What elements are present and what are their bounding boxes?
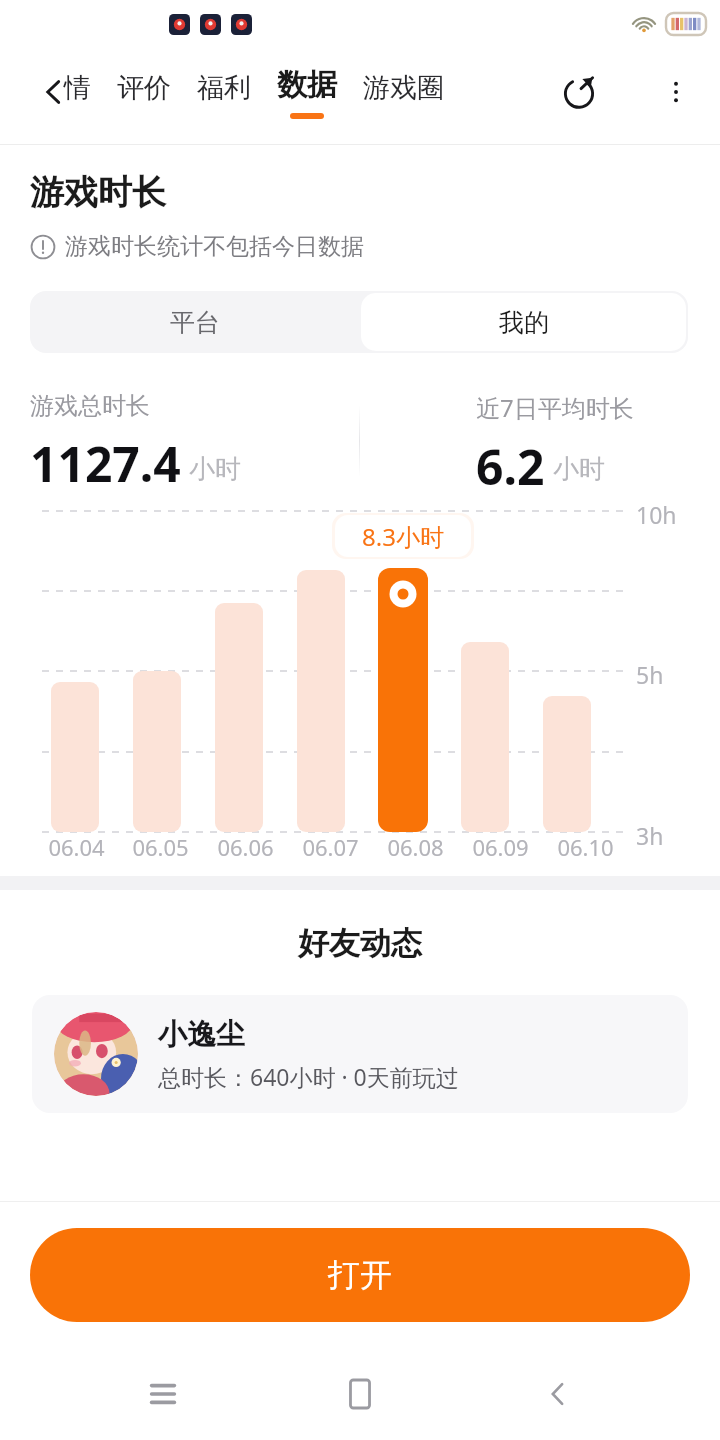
staticText: 小逸尘: [158, 1016, 245, 1053]
staticText: 5h: [636, 659, 664, 690]
staticText: 06.08: [387, 832, 444, 862]
staticText: 游戏圈: [363, 71, 444, 105]
staticText: 10h: [636, 499, 677, 530]
staticText: 1127.4: [30, 431, 181, 491]
staticText: 总时长：640小时 · 0天前玩过: [158, 1061, 459, 1092]
button[interactable]: 打开: [30, 1228, 690, 1322]
staticText: 06.05: [132, 832, 189, 862]
staticText: 福利: [197, 71, 251, 105]
button[interactable]: 数据: [275, 66, 339, 119]
staticText: 数据: [277, 66, 337, 104]
staticText: 好友动态: [298, 924, 422, 963]
staticText: 评价: [117, 71, 171, 105]
button[interactable]: 游戏圈: [361, 71, 446, 114]
staticText: 平台: [170, 307, 220, 338]
staticText: 游戏时长: [30, 171, 166, 214]
staticText: 打开: [328, 1255, 392, 1295]
staticText: 游戏时长统计不包括今日数据: [65, 232, 364, 261]
staticText: 情: [64, 71, 91, 105]
button[interactable]: Back: [523, 1359, 593, 1429]
staticText: 游戏总时长: [30, 391, 150, 421]
button[interactable]: More options: [654, 70, 698, 114]
button[interactable]: 福利: [195, 71, 253, 114]
button[interactable]: 平台: [30, 291, 359, 353]
button[interactable]: Back: [34, 72, 74, 112]
staticText: 3h: [636, 820, 664, 851]
button[interactable]: Share: [556, 69, 602, 115]
button[interactable]: 我的: [361, 293, 686, 351]
staticText: 我的: [499, 307, 549, 338]
button[interactable]: 评价: [115, 71, 173, 114]
button[interactable]: 小逸尘: [32, 995, 688, 1113]
staticText: 06.07: [302, 832, 359, 862]
staticText: 06.04: [48, 832, 105, 862]
staticText: 06.09: [472, 832, 529, 862]
button[interactable]: 情: [62, 71, 93, 114]
staticText: 6.2: [476, 434, 545, 491]
staticText: 近7日平均时长: [476, 391, 634, 424]
button[interactable]: Recent apps: [128, 1359, 198, 1429]
staticText: 8.3小时: [362, 520, 444, 553]
staticText: 06.10: [557, 832, 614, 862]
button[interactable]: Home: [325, 1359, 395, 1429]
staticText: 小时: [189, 453, 241, 486]
staticText: 小时: [553, 453, 605, 486]
staticText: 06.06: [217, 832, 274, 862]
